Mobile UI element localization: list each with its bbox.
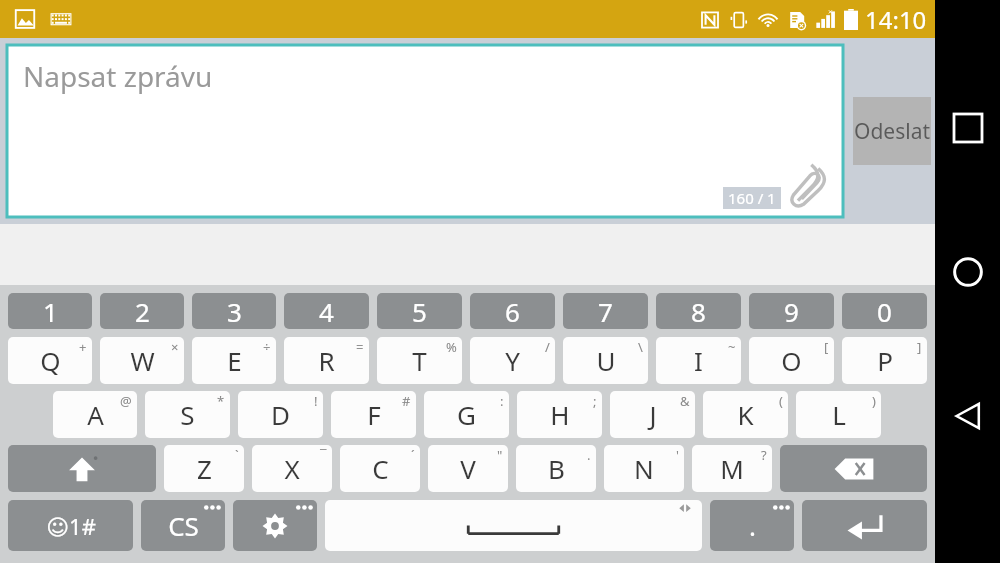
button[interactable]: P <box>842 337 927 384</box>
button[interactable]: 0 <box>842 293 927 329</box>
staticText: # <box>402 392 411 410</box>
staticText: X <box>284 451 300 486</box>
button[interactable]: Y <box>470 337 555 384</box>
button[interactable]: Shift <box>8 445 156 492</box>
button[interactable]: J <box>610 391 695 438</box>
button[interactable]: 3 <box>192 293 276 329</box>
button[interactable]: Home <box>940 244 996 300</box>
staticText: P <box>877 343 893 378</box>
button[interactable]: I <box>656 337 741 384</box>
button[interactable]: CS <box>141 500 225 551</box>
button[interactable]: 9 <box>749 293 834 329</box>
staticText: M <box>720 451 744 486</box>
button[interactable]: O <box>749 337 834 384</box>
staticText: ! <box>314 392 318 410</box>
button[interactable]: 1 <box>8 293 92 329</box>
button[interactable]: Backspace <box>780 445 927 492</box>
staticText: W <box>130 343 155 378</box>
button[interactable]: M <box>692 445 772 492</box>
staticText: \ <box>638 338 643 356</box>
staticText: E <box>227 343 242 378</box>
button[interactable]: T <box>377 337 462 384</box>
button[interactable]: L <box>796 391 881 438</box>
button[interactable]: 8 <box>656 293 741 329</box>
staticText: 2 <box>135 294 150 329</box>
button[interactable]: F <box>331 391 416 438</box>
staticText: . <box>749 508 756 543</box>
staticText: I <box>694 343 703 378</box>
staticText: 6 <box>505 294 520 329</box>
staticText: ] <box>917 338 922 356</box>
button[interactable]: Attach <box>781 157 837 213</box>
staticText: 4 <box>319 294 334 329</box>
button[interactable]: ☺1# <box>8 500 133 551</box>
button[interactable]: C <box>340 445 420 492</box>
button[interactable]: . <box>710 500 794 551</box>
staticText: B <box>548 451 565 486</box>
staticText: F <box>367 397 381 432</box>
staticText: U <box>596 343 616 378</box>
button[interactable]: 6 <box>470 293 555 329</box>
button[interactable]: X <box>252 445 332 492</box>
staticText: 8 <box>691 294 706 329</box>
button[interactable]: Space <box>325 500 702 551</box>
staticText: S <box>180 397 195 432</box>
staticText: ; <box>593 392 597 410</box>
button[interactable]: R <box>284 337 369 384</box>
staticText: K <box>737 397 754 432</box>
staticText: L <box>832 397 846 432</box>
staticText: & <box>680 392 690 410</box>
button[interactable]: E <box>192 337 276 384</box>
button[interactable]: Keyboard settings <box>233 500 317 551</box>
staticText: 0 <box>877 294 892 329</box>
button[interactable]: 7 <box>563 293 648 329</box>
button[interactable]: U <box>563 337 648 384</box>
button[interactable]: N <box>604 445 684 492</box>
button[interactable]: 2 <box>100 293 184 329</box>
staticText: @ <box>120 392 132 410</box>
button[interactable]: Odeslat <box>853 97 931 165</box>
staticText: O <box>781 343 802 378</box>
button[interactable]: 5 <box>377 293 462 329</box>
staticText: R <box>318 343 335 378</box>
staticText: ÷ <box>263 338 271 356</box>
staticText: Z <box>197 451 212 486</box>
staticText: 3 <box>227 294 242 329</box>
button[interactable]: B <box>516 445 596 492</box>
button[interactable]: K <box>703 391 788 438</box>
staticText: N <box>634 451 654 486</box>
button[interactable]: Back <box>940 388 996 444</box>
staticText: H <box>550 397 570 432</box>
staticText: ¯ <box>320 446 327 464</box>
button[interactable]: Recents <box>940 100 996 156</box>
button[interactable]: Q <box>8 337 92 384</box>
button[interactable]: S <box>145 391 230 438</box>
staticText: D <box>271 397 290 432</box>
staticText: % <box>446 338 457 356</box>
button[interactable]: D <box>238 391 323 438</box>
staticText: / <box>545 338 550 356</box>
button[interactable]: 4 <box>284 293 369 329</box>
staticText: T <box>412 343 427 378</box>
staticText: ) <box>872 392 876 410</box>
button[interactable]: Z <box>164 445 244 492</box>
staticText: ´ <box>411 446 415 464</box>
staticText: Y <box>505 343 520 378</box>
staticText: 9 <box>784 294 799 329</box>
staticText: ? <box>761 446 767 464</box>
button[interactable]: A <box>53 391 137 438</box>
staticText: × <box>171 338 179 356</box>
staticText: " <box>497 446 503 464</box>
staticText: 14:10 <box>865 3 927 36</box>
button[interactable]: V <box>428 445 508 492</box>
staticText: CS <box>168 508 199 543</box>
staticText: 1 <box>43 294 58 329</box>
button[interactable]: W <box>100 337 184 384</box>
staticText: C <box>372 451 389 486</box>
button[interactable]: G <box>424 391 509 438</box>
button[interactable]: Enter <box>802 500 927 551</box>
staticText: 160 / 1 <box>728 188 776 208</box>
button[interactable]: Napsat zprávu <box>7 45 843 217</box>
button[interactable]: H <box>517 391 602 438</box>
